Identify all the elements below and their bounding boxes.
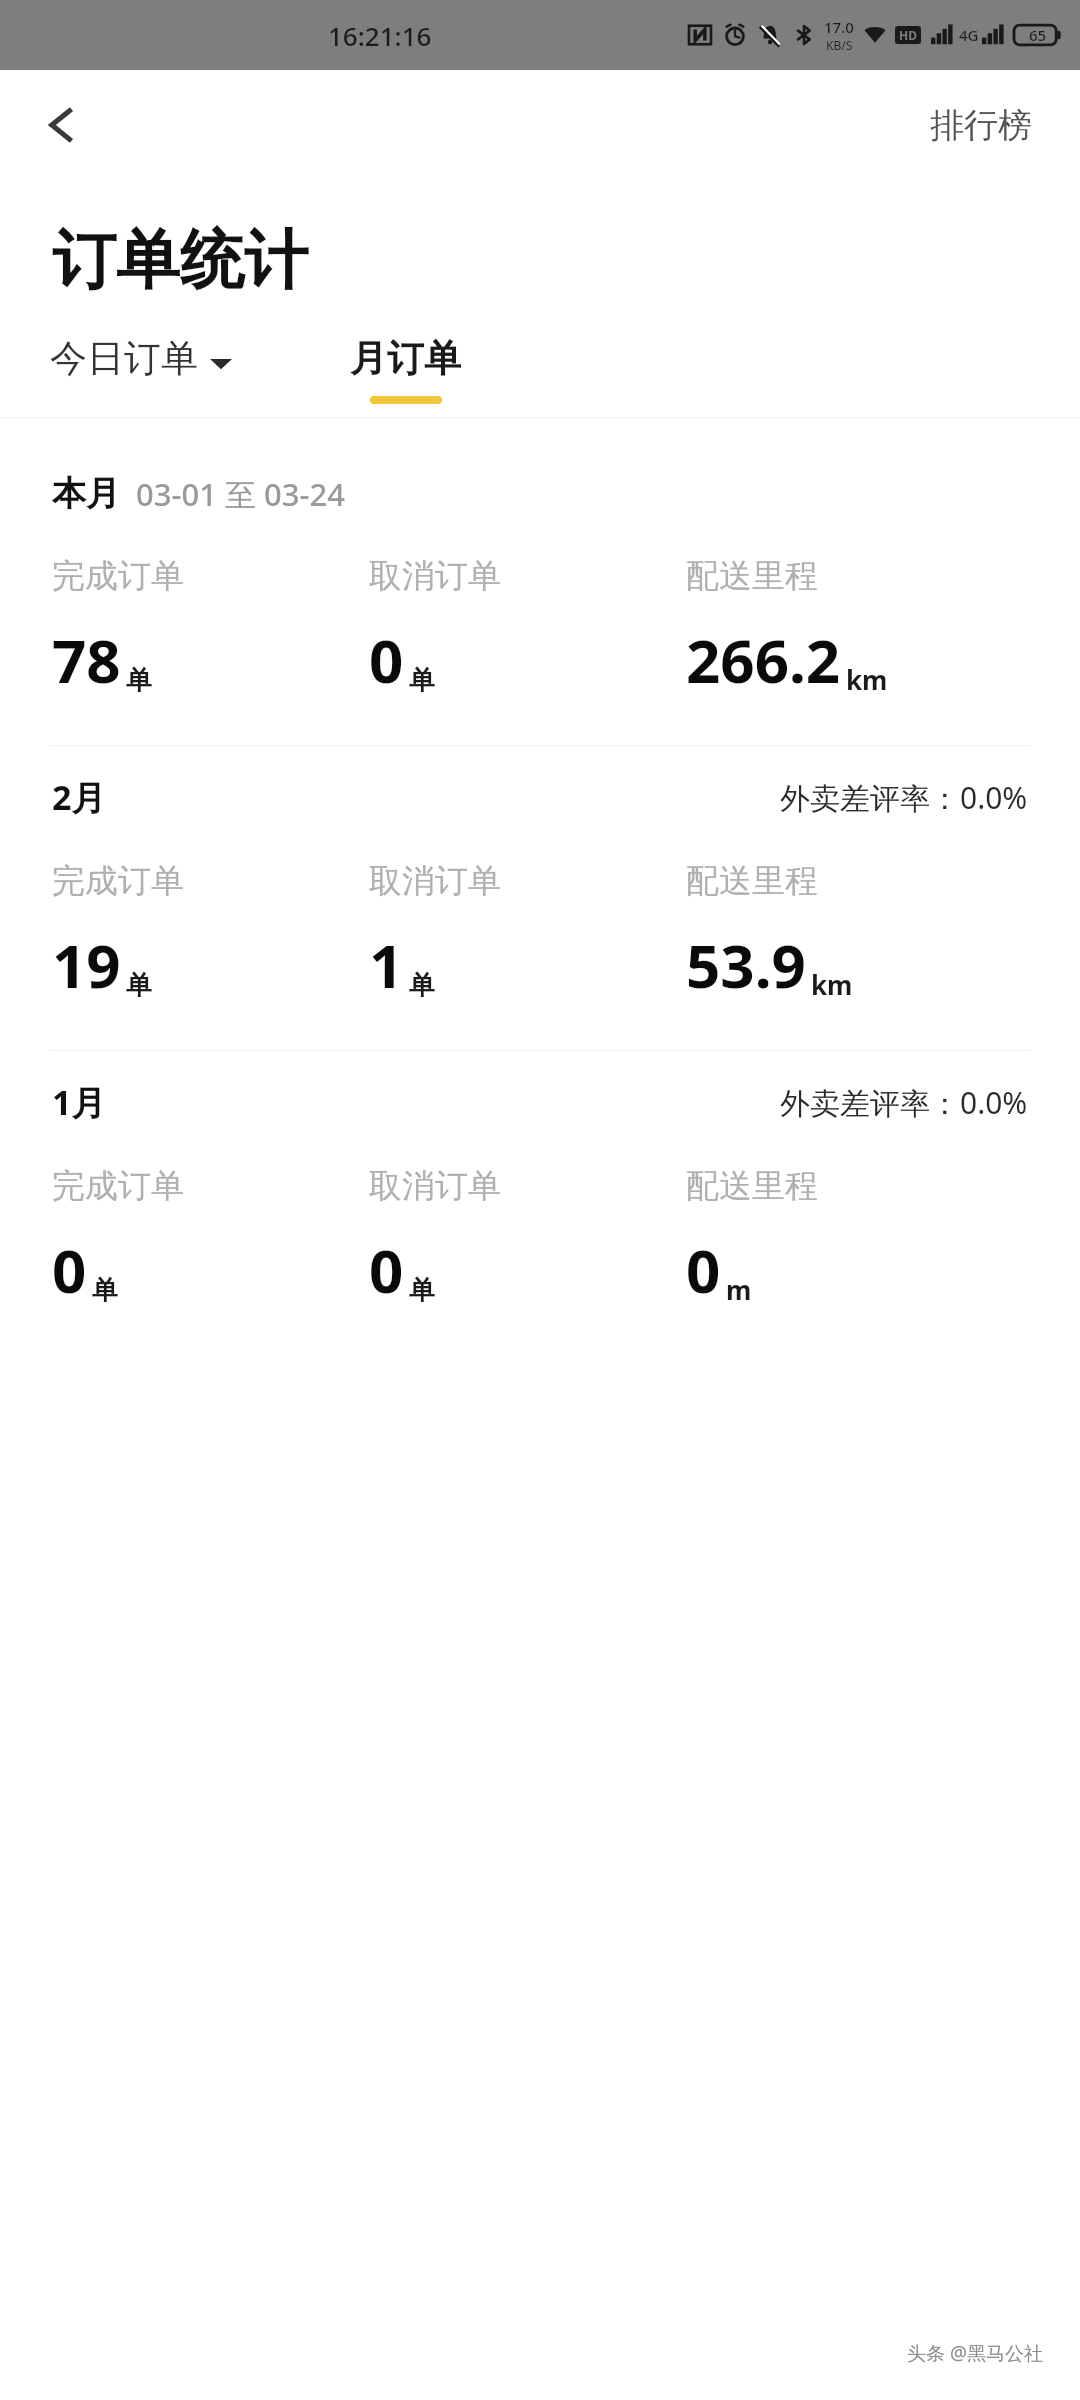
staticText: 0 [369, 1229, 404, 1311]
staticText: 0 [686, 1229, 721, 1311]
staticText: 完成订单 [52, 1165, 184, 1207]
staticText: HD [899, 27, 917, 43]
staticText: 本月 [52, 472, 120, 515]
staticText: KB/S [826, 37, 853, 53]
button[interactable]: 月订单 [350, 325, 461, 404]
staticText: 单 [409, 664, 435, 697]
staticText: 19 [52, 924, 121, 1006]
staticText: 单 [126, 969, 152, 1002]
staticText: 月订单 [350, 335, 461, 382]
staticText: 16:21:16 [328, 18, 432, 53]
staticText: 外卖差评率：0.0% [780, 1082, 1028, 1123]
staticText: 03-01 至 03-24 [136, 473, 345, 515]
staticText: 外卖差评率：0.0% [780, 777, 1028, 818]
staticText: 单 [92, 1274, 118, 1307]
staticText: 17.0 [824, 17, 854, 37]
staticText: 完成订单 [52, 860, 184, 902]
staticText: km [846, 662, 888, 697]
staticText: 0 [52, 1229, 87, 1311]
staticText: 订单统计 [52, 220, 308, 301]
button[interactable]: Back [30, 93, 94, 157]
staticText: 取消订单 [369, 860, 501, 902]
button[interactable]: 今日订单 [50, 325, 240, 382]
staticText: 78 [52, 619, 121, 701]
staticText: 65 [1029, 25, 1047, 45]
staticText: 1月 [52, 1079, 106, 1125]
staticText: 2月 [52, 774, 106, 820]
staticText: 266.2 [686, 619, 841, 701]
staticText: 单 [409, 1274, 435, 1307]
staticText: 今日订单 [50, 335, 198, 382]
staticText: 单 [409, 969, 435, 1002]
staticText: m [726, 1272, 752, 1307]
staticText: 完成订单 [52, 555, 184, 597]
staticText: 单 [126, 664, 152, 697]
staticText: 配送里程 [686, 860, 818, 902]
staticText: 53.9 [686, 924, 806, 1006]
staticText: 4G [959, 25, 979, 45]
staticText: 配送里程 [686, 555, 818, 597]
button[interactable]: 排行榜 [922, 96, 1040, 155]
staticText: 取消订单 [369, 1165, 501, 1207]
staticText: 取消订单 [369, 555, 501, 597]
staticText: 配送里程 [686, 1165, 818, 1207]
staticText: 排行榜 [930, 104, 1032, 147]
staticText: 头条 @黑马公社 [907, 2340, 1044, 2366]
staticText: 1 [369, 924, 404, 1006]
staticText: 0 [369, 619, 404, 701]
staticText: km [811, 967, 853, 1002]
